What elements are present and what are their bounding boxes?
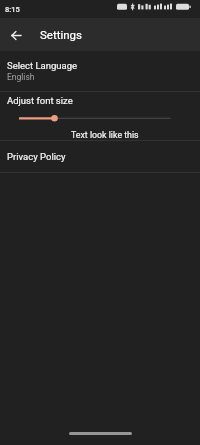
staticText: Text look like this — [71, 130, 139, 140]
staticText: 8:15 — [5, 5, 20, 14]
staticText: English — [7, 72, 35, 82]
staticText: Privacy Policy — [7, 151, 66, 162]
button[interactable]: Privacy Policy — [0, 141, 200, 172]
button[interactable]: Back — [0, 18, 33, 51]
staticText: Adjust font size — [7, 95, 73, 106]
button[interactable]: Select Language — [0, 51, 200, 91]
staticText: Settings — [40, 28, 82, 41]
staticText: Select Language — [7, 60, 78, 71]
